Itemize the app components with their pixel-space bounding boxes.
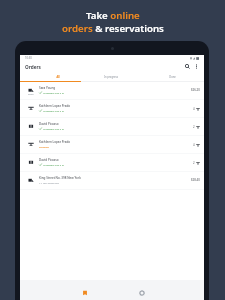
staticText: Kathleen Lopez Prado	[39, 140, 71, 144]
staticText: 2	[193, 161, 195, 165]
staticText: 09:30	[28, 93, 34, 96]
staticText: Take online	[86, 9, 140, 22]
staticText: Kathleen Lopez Prado	[39, 104, 71, 108]
staticText: orders & reservations	[62, 22, 164, 35]
staticText: David Picasso	[39, 158, 59, 162]
button[interactable]: Done	[143, 72, 204, 81]
staticText: $28.40	[191, 178, 200, 182]
staticText: Orders	[25, 64, 41, 70]
staticText: In progress	[104, 75, 118, 79]
staticText: Done	[169, 75, 176, 79]
staticText: Accepted 4 pz 3 kl	[43, 109, 64, 112]
button[interactable]: David Picasso	[20, 118, 204, 136]
staticText: Accepted 4 pz 3 kl	[43, 91, 64, 94]
staticText: Accepted 4 pz 3 kl	[43, 127, 64, 130]
button[interactable]: In progress	[82, 72, 143, 81]
staticText: Sara Young	[39, 86, 56, 90]
button[interactable]: Kathleen Lopez Prado	[20, 136, 204, 154]
staticText: David Picasso	[39, 122, 59, 126]
button[interactable]: 09:30	[20, 82, 204, 100]
staticText: 1.1 km 30:00 Out	[39, 181, 59, 184]
staticText: 10:30	[25, 56, 32, 60]
staticText: 4	[193, 143, 195, 147]
button[interactable]: Settings	[136, 287, 148, 299]
staticText: Accepted 4 pz 3 kl	[43, 163, 64, 166]
button[interactable]: Search	[183, 62, 192, 71]
button[interactable]: King Street No. 398 New York	[20, 172, 204, 190]
button[interactable]: Kathleen Lopez Prado	[20, 100, 204, 118]
button[interactable]: Orders	[79, 287, 91, 299]
staticText: $26.20	[191, 88, 200, 92]
button[interactable]: David Picasso	[20, 154, 204, 172]
staticText: 2	[193, 125, 195, 129]
staticText: King Street No. 398 New York	[39, 176, 81, 180]
staticText: 4	[193, 107, 195, 111]
staticText: Pending	[39, 145, 49, 148]
button[interactable]: More options	[192, 62, 201, 71]
button[interactable]: All	[20, 72, 82, 81]
staticText: All	[56, 75, 60, 79]
